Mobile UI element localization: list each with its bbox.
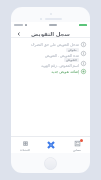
- button[interactable]: Account: [64, 137, 90, 153]
- staticText: مدخل التفويض على حق التصرف: [30, 42, 79, 47]
- staticText: سجل التفويض: [31, 30, 70, 37]
- staticText: حسابي: [73, 148, 82, 151]
- staticText: الخدمات: [20, 148, 30, 151]
- button[interactable]: Home: [38, 137, 64, 153]
- button[interactable]: التفويض: [11, 58, 90, 68]
- staticText: التفويض: [66, 58, 77, 62]
- button[interactable]: مدخل التفويض على حق التصرف: [11, 41, 90, 48]
- staticText: مفوض: [68, 48, 77, 52]
- button[interactable]: Back: [15, 30, 22, 37]
- button[interactable]: إضافة تفويض جديد: [11, 68, 90, 75]
- button[interactable]: مفوض: [11, 48, 90, 58]
- button[interactable]: Services: [11, 137, 38, 153]
- staticText: إضافة تفويض جديد: [51, 69, 79, 74]
- staticText: مدة التفويض . التفويض: [45, 53, 79, 58]
- staticText: اسم المفوض . رقم الهوية: [41, 63, 79, 68]
